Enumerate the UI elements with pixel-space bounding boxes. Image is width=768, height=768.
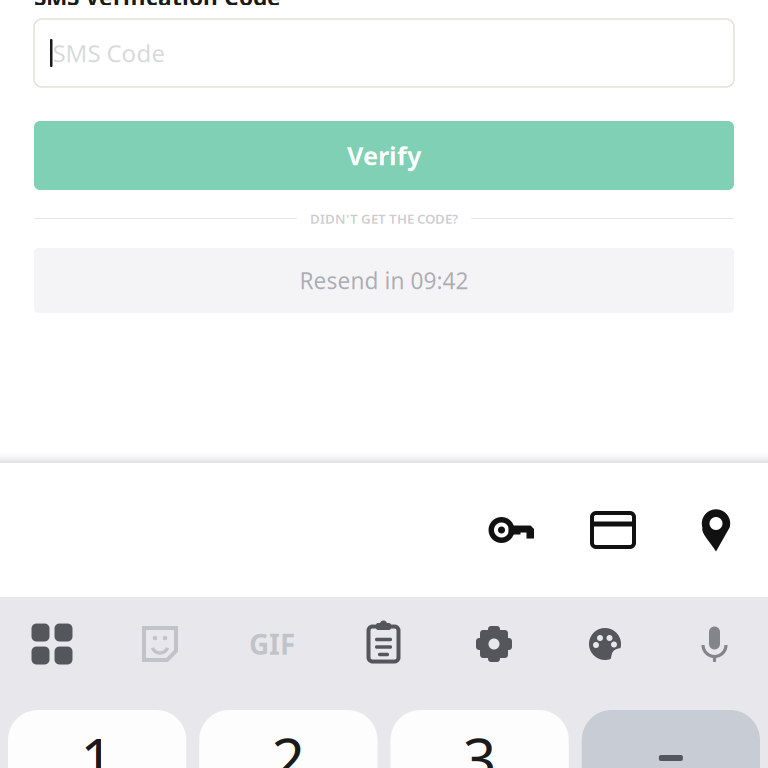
- button[interactable]: Clipboard: [328, 605, 439, 683]
- button[interactable]: Voice input: [661, 605, 768, 683]
- button[interactable]: 1: [8, 710, 186, 768]
- button[interactable]: Verify: [34, 121, 734, 190]
- button[interactable]: 3: [390, 710, 569, 768]
- button[interactable]: Resend in 09:42: [34, 248, 734, 313]
- button[interactable]: Passwords: [460, 493, 562, 567]
- staticText: Verify: [347, 139, 421, 172]
- button[interactable]: GIF: [216, 605, 328, 683]
- staticText: DIDN'T GET THE CODE?: [310, 210, 458, 227]
- staticText: 1: [80, 719, 114, 768]
- button[interactable]: Stickers: [104, 605, 216, 683]
- staticText: 3: [463, 719, 497, 768]
- staticText: 2: [271, 719, 305, 768]
- button[interactable]: Settings: [439, 605, 549, 683]
- button[interactable]: 2: [199, 710, 377, 768]
- staticText: Resend in 09:42: [299, 265, 468, 295]
- staticText: GIF: [249, 625, 295, 663]
- button[interactable]: Keyboard modes: [0, 605, 104, 683]
- button[interactable]: Addresses: [664, 493, 768, 567]
- button[interactable]: Credit cards: [562, 493, 664, 567]
- staticText: SMS Verification Code: [34, 0, 281, 12]
- button[interactable]: Themes: [549, 605, 661, 683]
- button[interactable]: Delete: [582, 710, 760, 768]
- staticText: SMS Code: [52, 37, 165, 69]
